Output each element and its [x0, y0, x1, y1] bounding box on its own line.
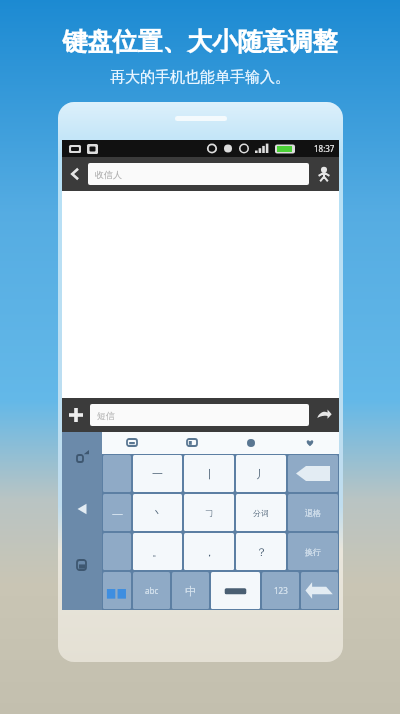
staticText: 丿: [256, 467, 267, 481]
staticText: 分词: [253, 508, 269, 518]
button[interactable]: [103, 572, 131, 609]
staticText: 丨: [204, 467, 215, 481]
button[interactable]: [288, 455, 338, 492]
button[interactable]: 换行: [288, 533, 338, 570]
button[interactable]: [211, 572, 260, 609]
button[interactable]: Back: [62, 157, 88, 191]
button[interactable]: 一: [133, 455, 182, 492]
staticText: 换行: [305, 547, 321, 557]
staticText: 𠃌: [205, 508, 213, 517]
staticText: 再大的手机也能单手输入。: [0, 68, 400, 87]
staticText: 短信: [97, 410, 115, 421]
button[interactable]: Move left: [71, 498, 93, 520]
staticText: 丶: [152, 506, 163, 520]
button[interactable]: 丶: [133, 494, 182, 531]
button[interactable]: 丿: [236, 455, 286, 492]
button[interactable]: 中: [172, 572, 209, 609]
staticText: 。: [152, 545, 163, 559]
staticText: 123: [274, 585, 288, 596]
staticText: 一: [152, 467, 163, 481]
staticText: 18:37: [314, 143, 335, 154]
button[interactable]: 𠃌: [184, 494, 234, 531]
staticText: ？: [256, 545, 267, 559]
button[interactable]: Layout: [162, 432, 221, 454]
button[interactable]: —: [103, 494, 131, 531]
button[interactable]: [301, 572, 338, 609]
button[interactable]: Keyboard: [102, 432, 162, 454]
staticText: 中: [185, 584, 196, 598]
button[interactable]: 短信: [90, 404, 309, 426]
button[interactable]: Send: [309, 398, 339, 432]
button[interactable]: Keyboard mode: [71, 554, 93, 576]
staticText: 键盘位置、大小随意调整: [0, 26, 400, 57]
button[interactable]: Add: [62, 398, 90, 432]
button[interactable]: ？: [236, 533, 286, 570]
staticText: 退格: [305, 508, 321, 518]
button[interactable]: 退格: [288, 494, 338, 531]
button[interactable]: 分词: [236, 494, 286, 531]
button[interactable]: 丨: [184, 455, 234, 492]
button[interactable]: 123: [262, 572, 299, 609]
button[interactable]: Emoji: [221, 432, 280, 454]
staticText: —: [112, 505, 123, 520]
button[interactable]: ，: [184, 533, 234, 570]
staticText: abc: [145, 585, 159, 596]
button[interactable]: abc: [133, 572, 170, 609]
button[interactable]: 收信人: [88, 163, 309, 185]
staticText: 收信人: [95, 169, 122, 180]
button[interactable]: Theme: [280, 432, 339, 454]
staticText: ，: [204, 545, 215, 559]
button[interactable]: Resize: [71, 446, 93, 468]
button[interactable]: 。: [133, 533, 182, 570]
button[interactable]: Contacts: [309, 157, 339, 191]
